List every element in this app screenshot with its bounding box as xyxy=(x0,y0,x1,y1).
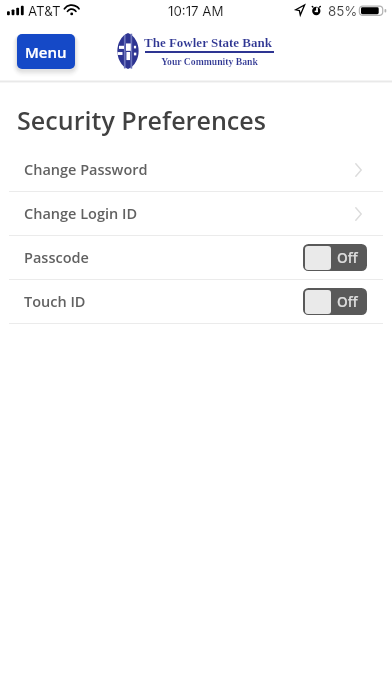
button[interactable]: Change Password xyxy=(0,148,392,191)
staticText: AT&T xyxy=(28,3,61,19)
staticText: Your Community Bank xyxy=(145,56,274,67)
staticText: Change Password xyxy=(24,160,148,180)
staticText: Off xyxy=(337,292,358,311)
staticText: The Fowler State Bank xyxy=(144,35,272,49)
staticText: 85% xyxy=(328,3,358,19)
button[interactable]: Toggle, currently Off xyxy=(303,288,367,315)
staticText: Passcode xyxy=(24,248,89,268)
button[interactable]: Change Login ID xyxy=(0,192,392,235)
staticText: Change Login ID xyxy=(24,204,138,224)
button[interactable]: Menu xyxy=(17,34,75,69)
staticText: Security Preferences xyxy=(17,103,266,137)
button[interactable]: Toggle, currently Off xyxy=(303,244,367,271)
staticText: 10:17 AM xyxy=(168,3,224,19)
staticText: Off xyxy=(337,248,358,267)
staticText: Touch ID xyxy=(24,292,86,312)
staticText: Menu xyxy=(25,42,67,62)
